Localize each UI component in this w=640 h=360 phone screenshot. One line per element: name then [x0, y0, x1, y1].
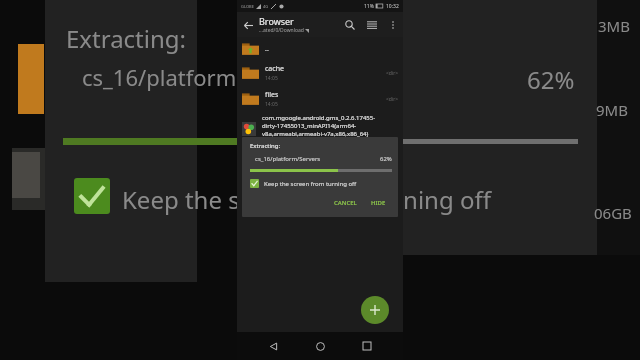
button[interactable]: HIDE: [367, 197, 390, 209]
staticText: 9MB: [596, 100, 628, 120]
staticText: 62%: [527, 63, 575, 96]
staticText: Keep the screen from turning off: [264, 180, 357, 188]
button[interactable]: cache: [237, 60, 403, 86]
staticText: 06GB: [594, 203, 632, 223]
staticText: cache: [265, 64, 284, 74]
staticText: Keep the screen from turning off: [122, 183, 491, 216]
staticText: ...ated/0/Download: [259, 27, 304, 34]
button[interactable]: More options: [383, 15, 403, 35]
button[interactable]: com.mgoogle.android.gms_0.2.6.17455-dirt…: [237, 114, 403, 146]
button[interactable]: Add: [361, 296, 389, 324]
staticText: <dir>: [386, 70, 399, 77]
staticText: 4G: [263, 4, 269, 9]
staticText: 14:05: [265, 75, 278, 82]
staticText: 62%: [380, 155, 392, 163]
staticText: HIDE: [371, 199, 386, 207]
staticText: CANCEL: [378, 268, 462, 298]
staticText: ..: [265, 44, 269, 54]
staticText: Browser: [259, 15, 294, 27]
button[interactable]: Keep the screen from turning off: [250, 179, 392, 188]
staticText: CANCEL: [334, 199, 357, 207]
button[interactable]: Back: [262, 335, 284, 357]
staticText: GLOBE: [241, 4, 254, 9]
button[interactable]: View options: [361, 14, 383, 36]
button[interactable]: Search: [339, 14, 361, 36]
button[interactable]: Home: [309, 335, 331, 357]
staticText: 11%: [364, 3, 374, 10]
button[interactable]: ..: [237, 37, 403, 60]
staticText: cs_16/platform/Servers: [255, 155, 380, 163]
staticText: Extracting:: [250, 142, 281, 150]
staticText: files: [265, 90, 279, 100]
button[interactable]: Recents: [356, 335, 378, 357]
button[interactable]: files: [237, 86, 403, 112]
staticText: <dir>: [386, 96, 399, 103]
staticText: 14:05: [265, 101, 278, 108]
staticText: Extracting:: [66, 22, 186, 55]
button[interactable]: CANCEL: [330, 197, 361, 209]
staticText: cs_16/platform: [82, 62, 237, 92]
button[interactable]: Back: [237, 14, 259, 36]
staticText: com.mgoogle.android.gms_0.2.6.17455-dirt…: [262, 114, 399, 146]
staticText: 10:32: [386, 3, 399, 10]
staticText: 3MB: [598, 16, 630, 36]
